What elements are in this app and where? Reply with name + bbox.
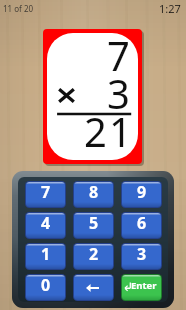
staticText: 2 bbox=[89, 244, 99, 265]
staticText: 7 bbox=[107, 33, 129, 82]
button[interactable]: 8 bbox=[74, 182, 113, 207]
staticText: 4 bbox=[41, 213, 51, 234]
staticText: 11 of 20 bbox=[3, 3, 34, 14]
staticText: 1:27 bbox=[159, 1, 181, 16]
button[interactable]: 6 bbox=[122, 213, 161, 238]
staticText: 5 bbox=[89, 213, 99, 234]
button[interactable]: Enter bbox=[122, 275, 161, 300]
staticText: 0 bbox=[41, 275, 51, 296]
button[interactable]: 0 bbox=[26, 275, 65, 300]
staticText: 1 bbox=[41, 244, 51, 265]
button[interactable]: 7 bbox=[43, 29, 142, 164]
staticText: 8 bbox=[89, 182, 99, 203]
staticText: 7 bbox=[41, 182, 51, 203]
button[interactable]: 3 bbox=[122, 244, 161, 269]
staticText: 9 bbox=[137, 182, 147, 203]
button[interactable]: 9 bbox=[122, 182, 161, 207]
button[interactable]: 1 bbox=[26, 244, 65, 269]
button[interactable]: Backspace bbox=[74, 275, 113, 300]
button[interactable]: 5 bbox=[74, 213, 113, 238]
staticText: Enter bbox=[131, 279, 157, 292]
staticText: 1 bbox=[109, 104, 131, 158]
button[interactable]: 7 bbox=[26, 182, 65, 207]
staticText: 3 bbox=[107, 66, 129, 120]
button[interactable]: 2 bbox=[74, 244, 113, 269]
staticText: 3 bbox=[137, 244, 147, 265]
staticText: 6 bbox=[137, 213, 147, 234]
button[interactable]: 4 bbox=[26, 213, 65, 238]
staticText: 2 bbox=[84, 104, 106, 158]
